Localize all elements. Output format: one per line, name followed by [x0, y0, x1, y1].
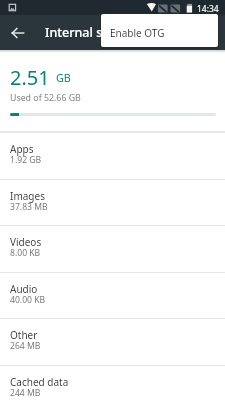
staticText: Other	[10, 328, 38, 342]
button[interactable]: Audio	[0, 272, 225, 319]
staticText: Audio	[10, 282, 38, 296]
staticText: Used of 52.66 GB	[10, 92, 81, 104]
button[interactable]: Enable OTG	[101, 14, 218, 47]
button[interactable]: Other	[0, 318, 225, 365]
staticText: Internal storage	[45, 24, 142, 41]
staticText: Videos	[10, 235, 42, 249]
staticText: 264 MB	[10, 340, 41, 352]
button[interactable]: Apps	[0, 132, 225, 179]
staticText: 14:34	[197, 3, 219, 15]
button[interactable]: Videos	[0, 225, 225, 272]
staticText: GB	[56, 70, 71, 85]
staticText: 8.00 KB	[10, 247, 41, 259]
button[interactable]: Images	[0, 179, 225, 226]
staticText: Cached data	[10, 375, 69, 389]
button[interactable]: Cached data	[0, 365, 225, 400]
staticText: Enable OTG	[110, 26, 165, 40]
staticText: 1.92 GB	[10, 154, 42, 166]
staticText: 244 MB	[10, 387, 41, 399]
staticText: 40.00 KB	[10, 294, 46, 306]
staticText: 2.51	[10, 64, 50, 91]
staticText: Images	[10, 189, 45, 203]
staticText: Apps	[10, 142, 34, 156]
button[interactable]	[6, 21, 30, 45]
staticText: 37.83 MB	[10, 201, 48, 213]
